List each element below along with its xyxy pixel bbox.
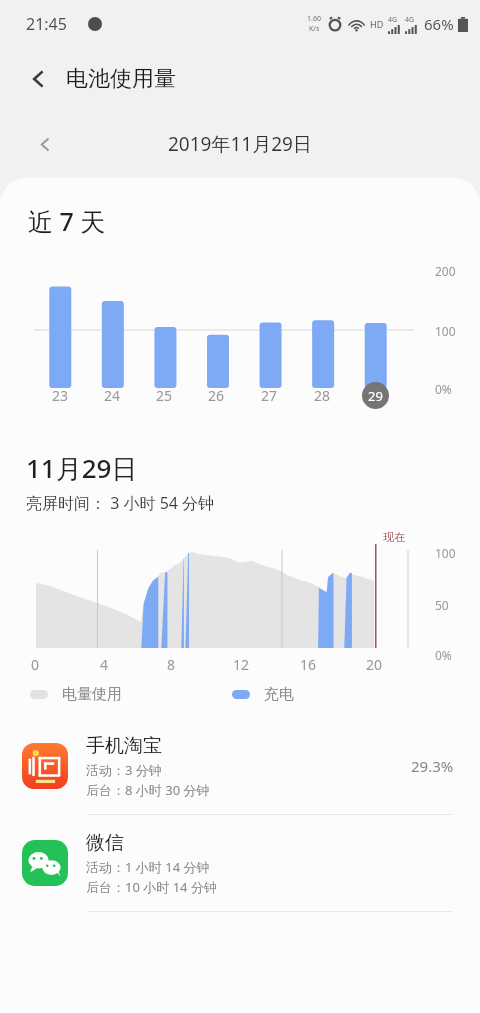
staticText: 8 <box>167 655 176 674</box>
staticText: HD <box>370 18 384 30</box>
staticText: K/s <box>309 24 320 34</box>
staticText: 0% <box>435 381 452 397</box>
staticText: 电量使用 <box>62 685 122 704</box>
staticText: 微信 <box>86 831 124 855</box>
staticText: 100 <box>435 545 456 561</box>
staticText: 25 <box>156 386 173 405</box>
staticText: 现在 <box>383 530 405 544</box>
button[interactable]: 手机淘宝 <box>0 718 480 814</box>
staticText: 24 <box>104 386 121 405</box>
staticText: 50 <box>435 597 449 613</box>
staticText: 29 <box>368 387 383 405</box>
staticText: 2019年11月29日 <box>168 131 312 157</box>
staticText: 27 <box>261 386 278 405</box>
staticText: 电池使用量 <box>66 65 176 93</box>
staticText: 21:45 <box>26 13 67 35</box>
staticText: 4G <box>405 15 415 25</box>
staticText: 近 7 天 <box>28 204 106 238</box>
staticText: 16 <box>300 655 317 674</box>
staticText: 100 <box>435 323 456 339</box>
staticText: 200 <box>435 263 456 279</box>
staticText: 0 <box>31 655 40 674</box>
staticText: 29.3% <box>411 756 454 776</box>
staticText: 20 <box>366 655 383 674</box>
staticText: 手机淘宝 <box>86 734 162 758</box>
staticText: 23 <box>52 386 69 405</box>
staticText: 后台：8 小时 30 分钟 <box>86 781 210 799</box>
staticText: 28 <box>314 386 331 405</box>
staticText: 活动：3 分钟 <box>86 761 162 779</box>
button[interactable]: 微信 <box>0 815 480 911</box>
button[interactable]: Back <box>0 48 480 110</box>
staticText: 活动：1 小时 14 分钟 <box>86 858 210 876</box>
staticText: 0% <box>435 647 452 663</box>
staticText: 充电 <box>264 685 294 704</box>
staticText: 11月29日 <box>26 450 138 486</box>
staticText: 1.60 <box>307 14 321 24</box>
staticText: 后台：10 小时 14 分钟 <box>86 878 217 896</box>
staticText: 4G <box>388 15 398 25</box>
staticText: 26 <box>208 386 225 405</box>
button[interactable]: Back <box>22 62 56 96</box>
staticText: 12 <box>233 655 250 674</box>
button[interactable]: Previous day <box>30 129 60 159</box>
staticText: 4 <box>100 655 109 674</box>
staticText: 亮屏时间： 3 小时 54 分钟 <box>26 492 215 514</box>
staticText: 66% <box>424 14 454 34</box>
